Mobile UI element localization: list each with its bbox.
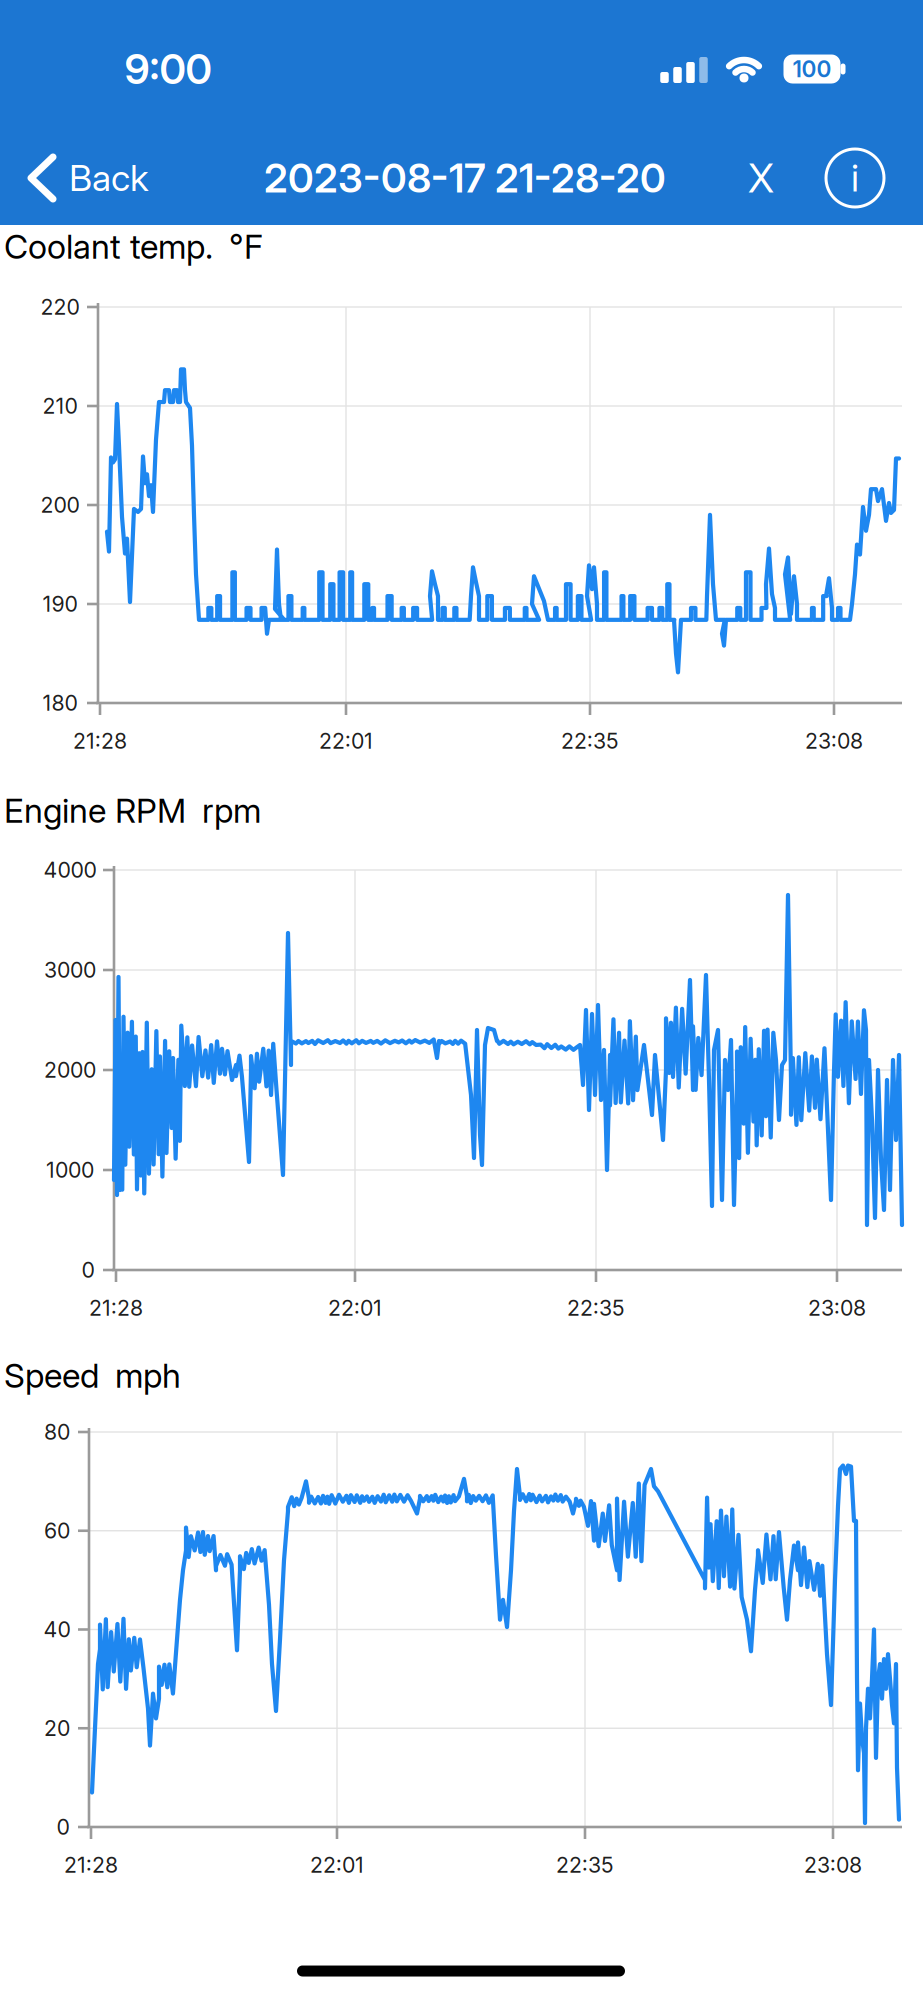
staticText: 80 bbox=[44, 1419, 70, 1445]
staticText: 0 bbox=[81, 1257, 94, 1283]
staticText: 4000 bbox=[43, 857, 96, 883]
staticText: Back bbox=[69, 157, 149, 199]
staticText: 1000 bbox=[46, 1157, 94, 1183]
staticText: 40 bbox=[43, 1617, 70, 1642]
staticText: 22:35 bbox=[556, 1852, 614, 1878]
staticText: 200 bbox=[40, 492, 79, 518]
staticText: 100 bbox=[792, 56, 831, 82]
staticText: 9:00 bbox=[124, 45, 211, 93]
staticText: 21:28 bbox=[73, 728, 127, 754]
staticText: 180 bbox=[42, 690, 77, 716]
staticText: 22:35 bbox=[561, 728, 619, 754]
staticText: 2000 bbox=[44, 1057, 96, 1083]
staticText: 22:35 bbox=[567, 1295, 625, 1321]
staticText: 2023-08-17 21-28-20 bbox=[264, 154, 666, 202]
staticText: Coolant temp. bbox=[4, 227, 213, 266]
staticText: Speed bbox=[4, 1356, 99, 1395]
staticText: 21:28 bbox=[89, 1295, 143, 1321]
staticText: 23:08 bbox=[805, 728, 863, 754]
staticText: rpm bbox=[202, 791, 261, 830]
staticText: 23:08 bbox=[808, 1295, 866, 1321]
staticText: 23:08 bbox=[804, 1852, 862, 1878]
staticText: 220 bbox=[40, 294, 79, 320]
staticText: X bbox=[748, 154, 774, 202]
staticText: i bbox=[851, 156, 859, 200]
button[interactable]: Info bbox=[826, 149, 884, 207]
staticText: 190 bbox=[42, 591, 77, 617]
button[interactable]: Close bbox=[731, 148, 791, 208]
staticText: 210 bbox=[42, 393, 77, 419]
staticText: 20 bbox=[44, 1716, 70, 1741]
staticText: 22:01 bbox=[328, 1295, 382, 1321]
staticText: 22:01 bbox=[310, 1852, 364, 1878]
staticText: Engine RPM bbox=[4, 791, 186, 830]
staticText: 0 bbox=[56, 1814, 69, 1840]
staticText: mph bbox=[115, 1356, 181, 1395]
staticText: 60 bbox=[44, 1518, 70, 1543]
staticText: 3000 bbox=[44, 957, 96, 983]
staticText: °F bbox=[229, 227, 263, 266]
staticText: 21:28 bbox=[64, 1852, 118, 1878]
button[interactable]: Back bbox=[27, 154, 149, 202]
staticText: 22:01 bbox=[319, 728, 373, 754]
